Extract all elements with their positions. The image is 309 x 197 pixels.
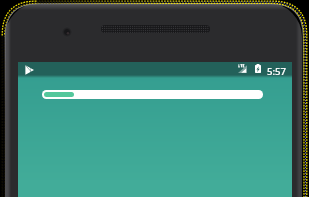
staticText: 5:57 [267, 65, 287, 78]
button[interactable] [42, 90, 263, 99]
other: Google Play notification [25, 65, 34, 75]
